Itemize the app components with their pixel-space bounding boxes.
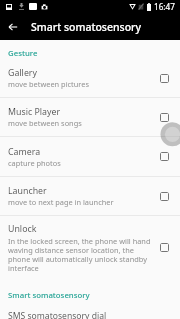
staticText: Smart somatosensory — [31, 20, 142, 34]
button[interactable]: Launcher — [0, 177, 180, 216]
staticText: Music Player — [8, 106, 61, 118]
button[interactable]: Enable Music Player gesture — [160, 113, 169, 122]
staticText: Gallery — [8, 67, 37, 79]
button[interactable]: Back — [0, 13, 26, 40]
staticText: In the locked screen, the phone will han… — [8, 236, 155, 273]
staticText: Gesture — [8, 48, 38, 59]
staticText: capture photos — [8, 158, 61, 168]
staticText: move between songs — [8, 118, 82, 128]
staticText: move between pictures — [8, 79, 89, 89]
staticText: move to next page in launcher — [8, 197, 114, 207]
staticText: Smart somatosensory — [8, 290, 90, 301]
staticText: Launcher — [8, 185, 47, 197]
button[interactable]: Unlock — [0, 216, 180, 280]
staticText: 16:47 — [154, 1, 175, 12]
button[interactable]: Camera — [0, 137, 180, 177]
button[interactable]: Music Player — [0, 98, 180, 137]
button[interactable]: Enable Camera gesture — [160, 152, 169, 161]
button[interactable]: Enable Unlock gesture — [160, 243, 169, 252]
staticText: SMS somatosensory dial — [8, 310, 107, 319]
staticText: Camera — [8, 146, 41, 158]
button[interactable]: Enable Gallery gesture — [160, 74, 169, 83]
button[interactable]: Enable Launcher gesture — [160, 192, 169, 201]
staticText: Unlock — [8, 223, 37, 235]
button[interactable]: Gallery — [0, 59, 180, 98]
button[interactable]: SMS somatosensory dial — [0, 301, 180, 319]
